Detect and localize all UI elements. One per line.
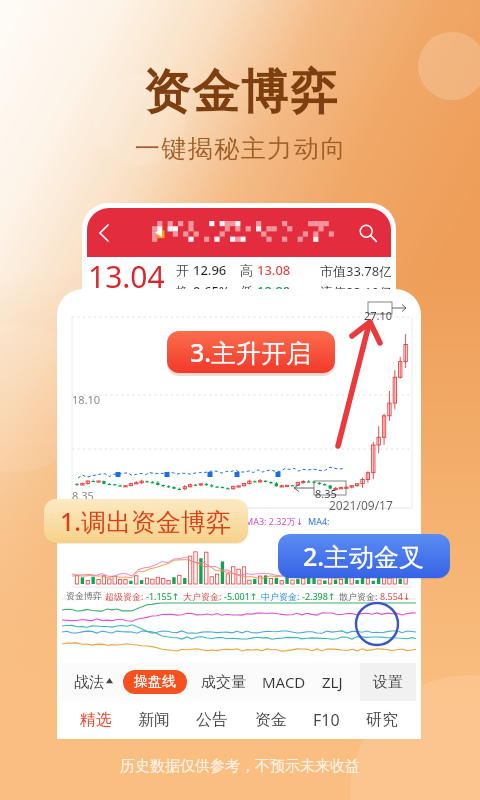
button[interactable]: ZLJ	[322, 666, 343, 698]
button[interactable]: 新闻	[126, 702, 182, 738]
button[interactable]: F10	[301, 701, 352, 739]
staticText: 开	[176, 261, 193, 279]
staticText: 0.65%	[193, 282, 230, 299]
staticText: 资金	[255, 710, 287, 730]
staticText: 低	[240, 282, 257, 299]
button[interactable]: 公告	[184, 702, 240, 738]
button[interactable]: 操盘线	[123, 670, 187, 694]
button[interactable]: Search	[345, 214, 391, 252]
button[interactable]: 研究	[354, 702, 410, 738]
staticText: 资金博弈	[66, 590, 102, 601]
staticText: 超级资金:	[105, 590, 146, 602]
staticText: MA4:	[308, 515, 330, 527]
staticText: 12.96	[193, 261, 227, 279]
staticText: 大户资金:	[183, 590, 224, 602]
staticText: 8.35	[315, 486, 337, 501]
staticText: F10	[313, 709, 340, 731]
button[interactable]: 3.主升开启	[167, 331, 335, 373]
staticText: 高	[240, 261, 257, 279]
staticText: 8.35	[72, 488, 94, 503]
staticText: 1.调出资金博弈	[60, 504, 232, 538]
staticText: 研究	[366, 710, 398, 730]
staticText: 27.10	[364, 308, 393, 323]
staticText: 精选	[80, 710, 112, 730]
staticText: 历史数据仅供参考，不预示未来收益	[120, 757, 360, 776]
staticText: 换	[176, 282, 193, 299]
button[interactable]: 战法	[74, 667, 113, 698]
staticText: -2.398↑	[302, 590, 336, 602]
button[interactable]: 1.调出资金博弈	[44, 499, 248, 543]
staticText: 市值33.78亿	[320, 262, 391, 280]
staticText: 12.90	[257, 282, 291, 299]
staticText: 资金博弈	[142, 63, 338, 122]
staticText: 操盘线	[134, 673, 176, 691]
button[interactable]: 成交量	[201, 667, 246, 698]
staticText: 新闻	[138, 710, 170, 730]
staticText: 流值23.19亿	[320, 283, 391, 299]
staticText: 8.554↓	[380, 590, 411, 602]
staticText: -5.001↑	[224, 590, 258, 602]
staticText: MA3: 2.32万↓	[245, 515, 304, 527]
staticText: 2021/09/17	[329, 497, 393, 513]
staticText: 战法	[74, 673, 104, 692]
staticText: 设置	[373, 673, 403, 692]
staticText: 18.10	[72, 392, 101, 407]
staticText: 13.08	[257, 261, 291, 279]
button[interactable]: 2.主动金叉	[278, 534, 450, 578]
staticText: 公告	[196, 710, 228, 730]
staticText: 一键揭秘主力动向	[134, 133, 346, 164]
staticText: 13.04	[88, 256, 165, 297]
staticText: 2.主动金叉	[303, 539, 425, 573]
button[interactable]: 资金	[243, 702, 299, 738]
button[interactable]: 精选	[68, 702, 124, 738]
staticText: -1.155↑	[146, 590, 180, 602]
staticText: 散户资金:	[339, 590, 380, 602]
staticText: 3.主升开启	[190, 335, 312, 369]
button[interactable]: MACD	[262, 666, 306, 698]
staticText: 中户资金:	[261, 590, 302, 602]
button[interactable]: Back	[87, 216, 123, 250]
button[interactable]: 设置	[360, 663, 416, 701]
staticText: MA2: 2.07万↓	[182, 515, 241, 527]
